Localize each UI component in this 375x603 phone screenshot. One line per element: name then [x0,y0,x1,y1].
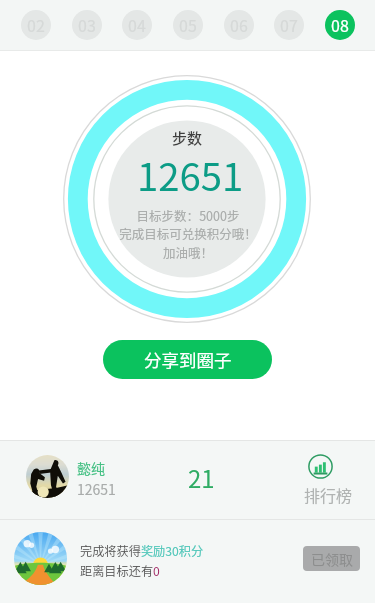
staticText: 07 [280,13,298,36]
button[interactable]: 08 [325,10,355,40]
staticText: 08 [331,13,349,36]
staticText: 05 [179,13,197,36]
button[interactable]: 04 [122,10,152,40]
button[interactable]: 02 [21,10,51,40]
staticText: 分享到圈子 [144,347,232,372]
staticText: 12651 [77,479,116,499]
staticText: 02 [27,13,45,36]
staticText: 03 [78,13,96,36]
staticText: 懿纯 [77,458,105,478]
staticText: 12651 [137,147,244,202]
button[interactable]: 03 [72,10,102,40]
button[interactable]: 07 [274,10,304,40]
staticText: 06 [230,13,248,36]
staticText: 排行榜 [304,483,353,506]
staticText: 21 [188,460,215,495]
button[interactable]: 05 [173,10,203,40]
staticText: 完成将获得奖励30积分 [80,542,204,560]
staticText: 04 [128,13,146,36]
staticText: 距离目标还有0 [80,562,160,580]
staticText: 步数 [172,127,203,149]
button[interactable]: 已领取 [303,546,360,571]
button[interactable]: 排行榜 [296,449,360,511]
staticText: 目标步数：5000步 完成目标可兑换积分哦！ 加油哦！ [119,206,257,262]
staticText: 已领取 [311,549,353,569]
button[interactable]: 懿纯 [0,441,375,519]
button[interactable]: 06 [224,10,254,40]
button[interactable]: 分享到圈子 [103,340,272,379]
